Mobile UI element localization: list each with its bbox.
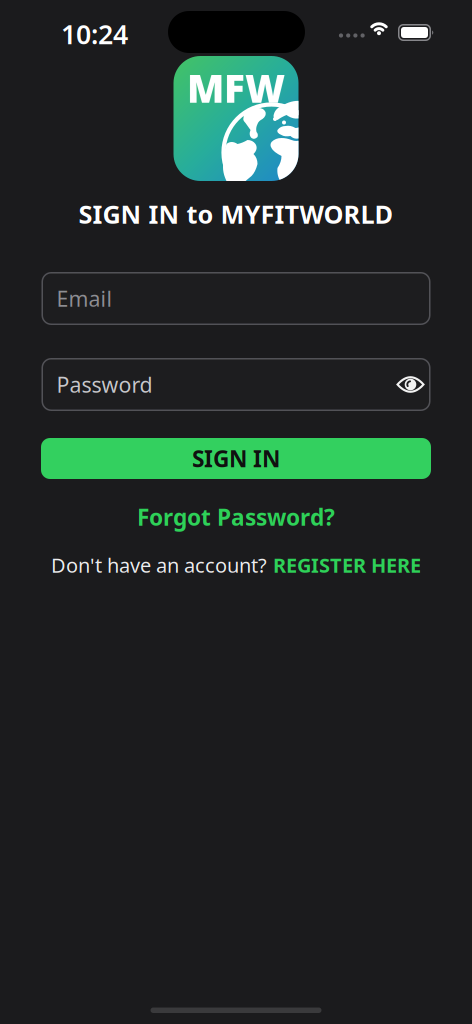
button[interactable]: Email <box>41 272 430 325</box>
staticText: 10:24 <box>61 16 128 52</box>
staticText: SIGN IN <box>192 443 280 473</box>
staticText: Forgot Password? <box>137 502 335 532</box>
staticText: SIGN IN to MYFITWORLD <box>78 197 393 231</box>
staticText: Password <box>56 370 152 399</box>
button[interactable]: Password <box>41 358 430 411</box>
button[interactable]: SIGN IN <box>41 438 431 479</box>
staticText: Email <box>56 284 112 313</box>
staticText: REGISTER HERE <box>273 552 421 578</box>
staticText: Don't have an account? <box>51 552 267 578</box>
staticText: MFW <box>187 62 285 113</box>
button[interactable]: Forgot Password? <box>137 504 335 530</box>
button[interactable]: Show password <box>395 373 425 395</box>
button[interactable]: REGISTER HERE <box>273 552 421 578</box>
